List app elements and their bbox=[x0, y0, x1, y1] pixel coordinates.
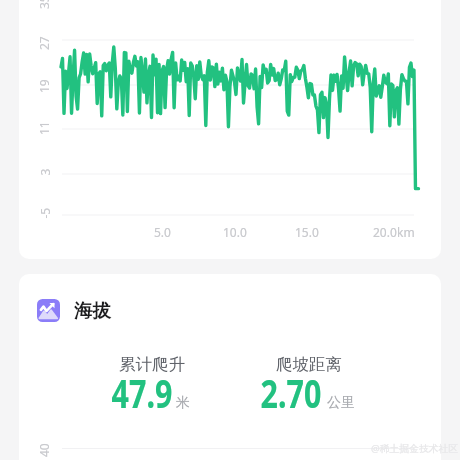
staticText: 15.0 bbox=[295, 224, 319, 240]
staticText: 11 bbox=[36, 121, 52, 135]
staticText: 19 bbox=[36, 79, 52, 93]
staticText: 3 bbox=[36, 168, 52, 175]
button[interactable]: 海拔 bbox=[74, 295, 114, 325]
button[interactable] bbox=[57, 348, 247, 416]
staticText: 47.9 bbox=[112, 365, 172, 419]
staticText: km bbox=[397, 224, 415, 240]
staticText: 海拔 bbox=[74, 299, 111, 322]
button[interactable]: Elevation bbox=[19, 274, 441, 460]
staticText: 27 bbox=[36, 36, 52, 50]
button[interactable]: Elevation bbox=[37, 299, 60, 322]
button[interactable]: 35 bbox=[19, 0, 441, 259]
staticText: 公里 bbox=[327, 394, 355, 412]
staticText: 5.0 bbox=[154, 224, 171, 240]
staticText: 10.0 bbox=[223, 224, 247, 240]
staticText: 爬坡距离 bbox=[276, 354, 342, 375]
staticText: 2.70 bbox=[261, 365, 321, 419]
staticText: 累计爬升 bbox=[119, 354, 185, 375]
staticText: @稀土掘金技术社区 bbox=[371, 442, 459, 455]
staticText: 40 bbox=[36, 443, 52, 457]
staticText: -5 bbox=[36, 207, 52, 218]
button[interactable] bbox=[214, 348, 404, 416]
staticText: 35 bbox=[36, 0, 52, 9]
staticText: 米 bbox=[176, 394, 190, 412]
staticText: 20.0 bbox=[373, 224, 397, 240]
